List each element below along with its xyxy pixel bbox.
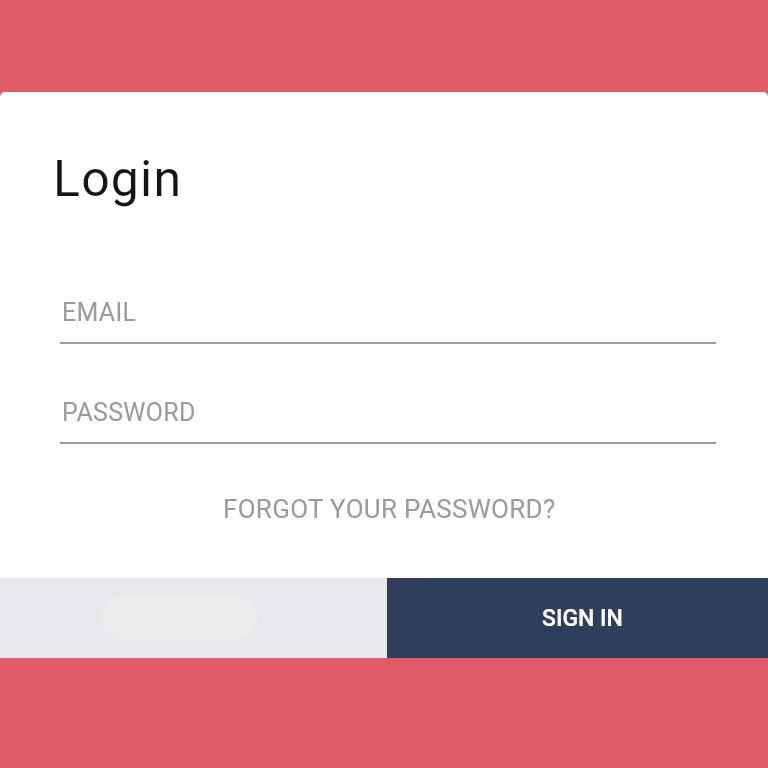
staticText: Login [53, 150, 183, 209]
button[interactable]: EMAIL [0, 282, 768, 354]
button[interactable]: FORGOT YOUR PASSWORD? [217, 488, 562, 530]
staticText: PASSWORD [62, 398, 196, 427]
staticText: SIGN IN [542, 605, 623, 632]
button[interactable]: SIGN IN [387, 578, 768, 658]
staticText: EMAIL [62, 298, 137, 327]
button[interactable]: PASSWORD [0, 382, 768, 454]
staticText: FORGOT YOUR PASSWORD? [223, 494, 556, 524]
